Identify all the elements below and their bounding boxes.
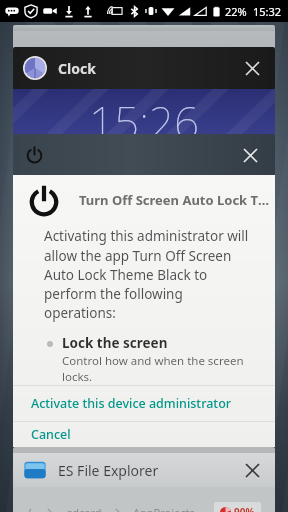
button[interactable] (13, 25, 275, 51)
button[interactable]: Close Turn Off Screen Auto Lock (13, 134, 275, 447)
staticText: 15:32 (253, 4, 282, 19)
staticText: sdcard (67, 505, 102, 512)
button[interactable]: Clock (13, 47, 275, 137)
staticText: Activate this device administrator (31, 395, 232, 412)
staticText: / (27, 505, 32, 512)
button[interactable]: Close ES File Explorer (239, 457, 265, 483)
staticText: 90% (234, 505, 255, 512)
staticText: Lock the screen (62, 334, 168, 352)
staticText: Cancel (31, 426, 71, 443)
staticText: 15:26 (89, 92, 199, 137)
button[interactable]: Close Turn Off Screen Auto Lock (237, 142, 263, 168)
staticText: Control how and when the screen locks. (62, 353, 259, 385)
staticText: AppProjects (133, 505, 195, 512)
staticText: Clock (58, 59, 96, 78)
button[interactable]: Cancel (13, 422, 275, 447)
button[interactable]: Close Clock (239, 55, 265, 81)
button[interactable]: 90% (220, 505, 255, 512)
staticText: ES File Explorer (58, 461, 159, 480)
button[interactable]: ES File Explorer (13, 447, 275, 512)
staticText: 22% (225, 4, 247, 19)
staticText: Activating this administrator will allow… (44, 227, 253, 322)
button[interactable]: Activate this device administrator (13, 386, 275, 421)
staticText: Turn Off Screen Auto Lock The.. (79, 191, 275, 209)
